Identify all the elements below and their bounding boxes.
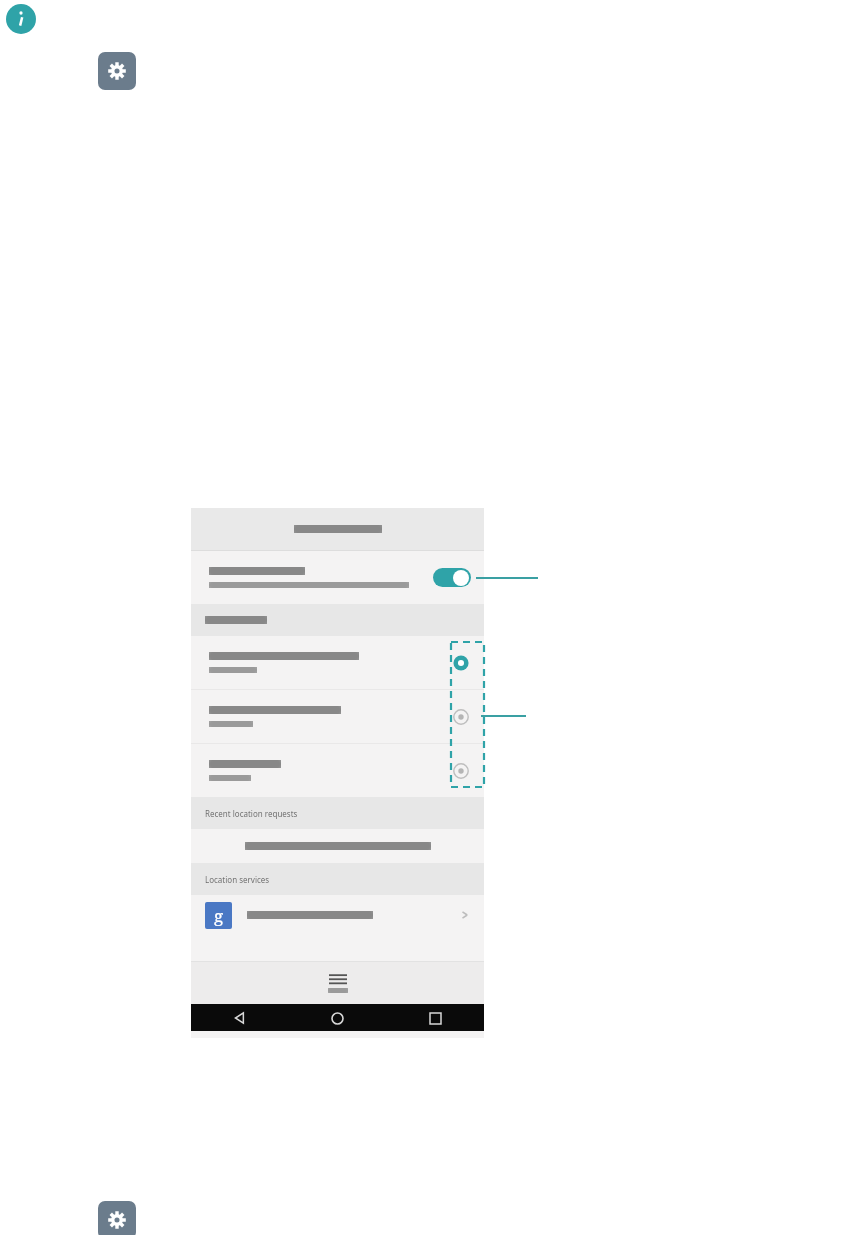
staticText: Location services <box>205 874 270 885</box>
button[interactable]: Option <box>450 706 472 728</box>
button[interactable]: Back <box>230 1008 250 1028</box>
button[interactable]: Option <box>191 744 484 797</box>
button[interactable]: Information <box>6 4 36 34</box>
button[interactable]: Settings <box>98 52 136 90</box>
button[interactable]: Selected option <box>450 652 472 674</box>
button[interactable]: Home <box>327 1008 347 1028</box>
button[interactable] <box>191 551 484 604</box>
button[interactable] <box>433 568 471 587</box>
button[interactable]: Settings <box>98 1201 136 1235</box>
button[interactable]: Selected option <box>191 636 484 689</box>
button[interactable]: Option <box>191 690 484 743</box>
staticText: g <box>214 904 224 927</box>
button[interactable]: Recent apps <box>425 1008 445 1028</box>
button[interactable] <box>191 962 484 1004</box>
button[interactable]: g <box>191 895 484 935</box>
staticText: Recent location requests <box>205 808 298 819</box>
button[interactable]: Option <box>450 760 472 782</box>
